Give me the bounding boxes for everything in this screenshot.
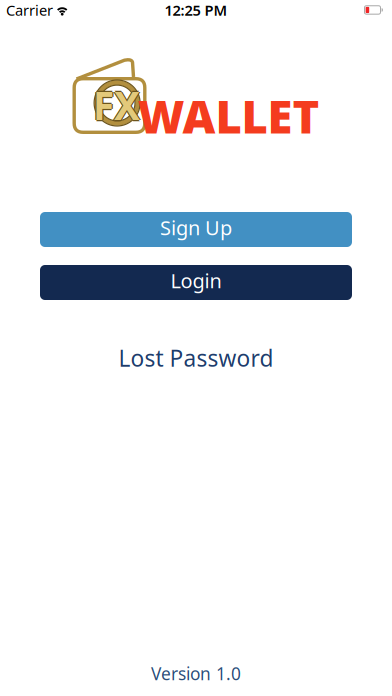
staticText: Carrier xyxy=(6,0,53,20)
staticText: FX xyxy=(93,80,140,132)
staticText: FX xyxy=(93,78,140,129)
staticText: WALLET xyxy=(137,86,319,146)
staticText: FX xyxy=(94,79,141,131)
staticText: Sign Up xyxy=(160,214,232,241)
staticText: FX xyxy=(93,79,140,131)
button[interactable]: Login xyxy=(40,265,352,300)
staticText: Lost Password xyxy=(118,343,273,373)
button[interactable]: Sign Up xyxy=(40,212,352,247)
staticText: FX xyxy=(92,79,139,131)
staticText: 12:25 PM xyxy=(164,0,227,20)
staticText: Login xyxy=(170,267,221,294)
staticText: Version 1.0 xyxy=(151,662,241,685)
button[interactable]: Lost Password xyxy=(118,343,273,373)
